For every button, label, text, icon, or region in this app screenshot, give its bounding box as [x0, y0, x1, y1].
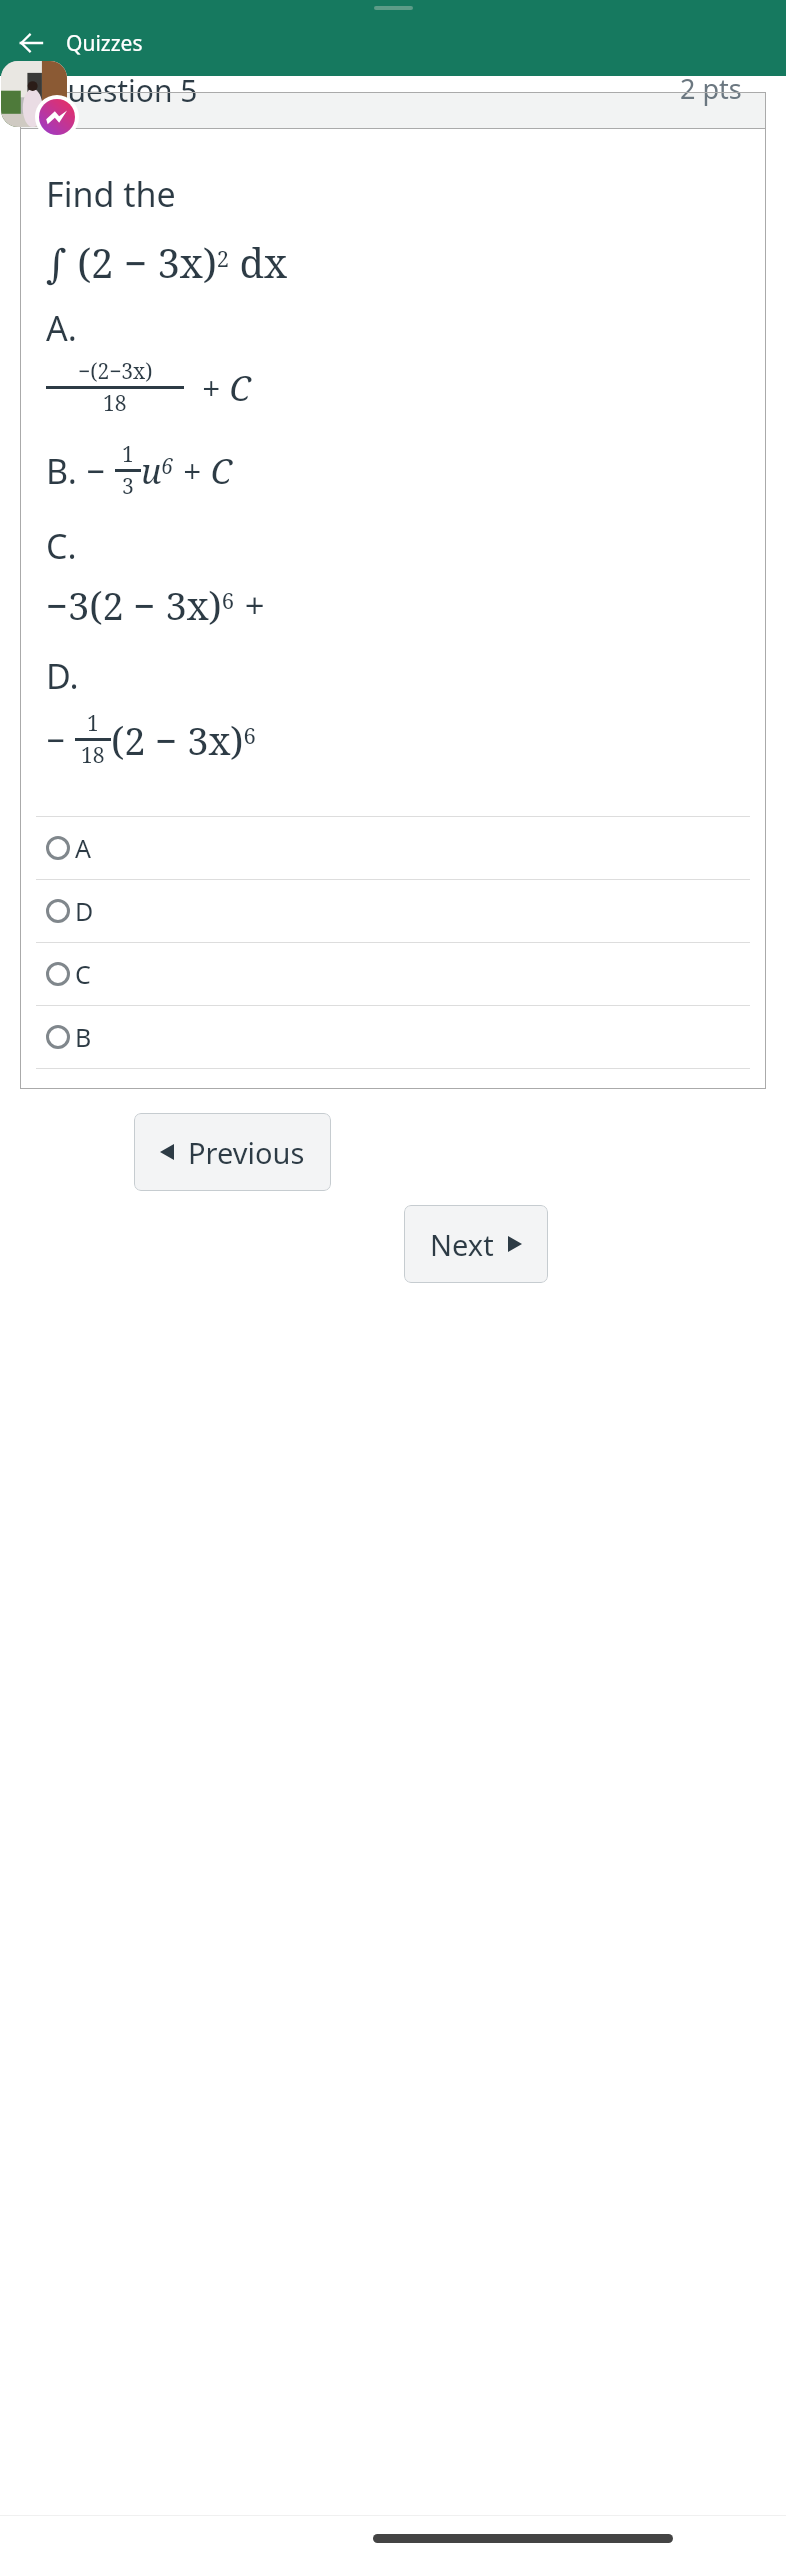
staticText: B	[75, 1020, 92, 1054]
button[interactable]: Messenger chat head	[1, 61, 79, 139]
button[interactable]: A	[36, 817, 750, 879]
staticText: A.	[46, 305, 77, 351]
staticText: 1	[122, 440, 134, 469]
staticText: + C	[174, 448, 233, 494]
button[interactable]: D	[36, 880, 750, 942]
staticText: −3(2 − 3x)6 +	[46, 579, 266, 631]
staticText: A	[75, 831, 91, 865]
staticText: Previous	[188, 1133, 305, 1172]
staticText: Question 5	[44, 70, 198, 106]
button[interactable]: Back	[8, 20, 54, 66]
staticText: Find the	[46, 171, 176, 217]
staticText: B.	[46, 448, 86, 494]
staticText: D	[75, 894, 94, 928]
staticText: Next	[430, 1225, 494, 1264]
button[interactable]: B	[36, 1006, 750, 1068]
button[interactable]: C	[36, 943, 750, 1005]
staticText: −(2−3x)	[78, 357, 153, 386]
staticText: u6	[141, 448, 174, 494]
staticText: 18	[103, 389, 127, 418]
staticText: (2 − 3x)6	[111, 714, 256, 766]
staticText: 2 pts	[680, 70, 742, 106]
staticText: D.	[46, 653, 79, 699]
staticText: 3	[122, 472, 134, 501]
button[interactable]: Next	[404, 1205, 548, 1283]
staticText: 1	[87, 709, 99, 738]
staticText: + C	[184, 365, 251, 411]
staticText: 18	[81, 741, 105, 770]
button[interactable]: Previous	[134, 1113, 331, 1191]
staticText: −	[46, 717, 75, 763]
staticText: −	[86, 448, 115, 494]
staticText: C.	[46, 523, 77, 569]
staticText: C	[75, 957, 91, 991]
staticText: Quizzes	[66, 29, 143, 58]
staticText: ∫ (2 − 3x)2 dx	[46, 235, 288, 289]
